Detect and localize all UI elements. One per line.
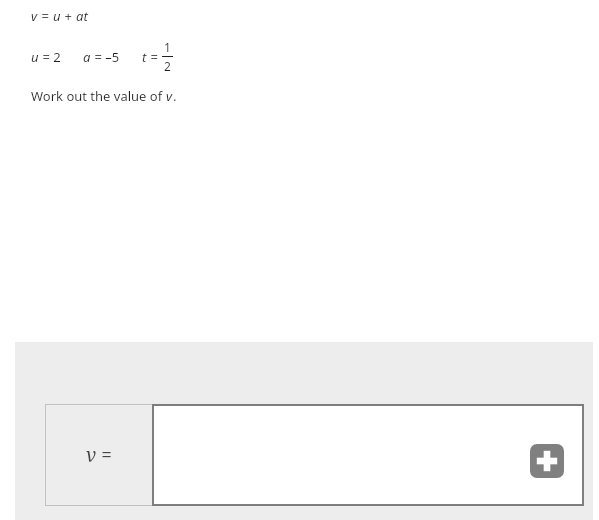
button[interactable]: Add [154, 406, 582, 504]
staticText: = [147, 48, 162, 66]
staticText: Work out the value of [31, 87, 166, 105]
staticText: u [31, 48, 39, 66]
staticText: = [38, 7, 53, 25]
staticText: v [166, 87, 173, 105]
staticText: at [76, 7, 88, 25]
staticText: 1 [164, 39, 171, 55]
button[interactable]: v = [46, 405, 152, 505]
staticText: = –5 [91, 48, 120, 66]
staticText: v [31, 7, 38, 25]
staticText: + [61, 7, 76, 25]
button[interactable]: Add [530, 444, 564, 478]
staticText: 2 [164, 58, 171, 74]
staticText: a [83, 48, 91, 66]
staticText: . [173, 87, 177, 105]
staticText: u [53, 7, 61, 25]
staticText: t [142, 48, 147, 66]
staticText: = 2 [39, 48, 61, 66]
staticText: v = [86, 442, 112, 468]
